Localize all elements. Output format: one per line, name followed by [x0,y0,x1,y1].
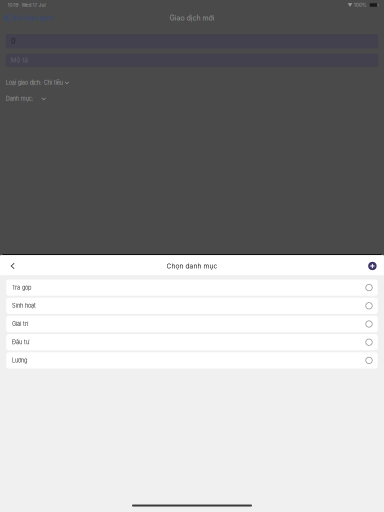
button[interactable]: Add category [359,256,384,275]
staticText: Giao dịch mới [169,14,214,22]
staticText: Loại giao dịch: [6,79,44,86]
button[interactable]: Back [0,256,23,275]
staticText: Trả góp [12,284,31,291]
staticText: Sinh hoạt [12,302,36,309]
button[interactable]: Trả góp [6,279,378,296]
button[interactable]: Danh mục: [6,94,378,104]
staticText: Chọn danh mục [166,262,217,270]
staticText: Lương [12,357,27,364]
staticText: 100% [354,2,367,8]
staticText: DS Giao dịch [12,14,54,22]
staticText: Chi tiêu [44,79,63,86]
button[interactable]: Đầu tư [6,334,378,350]
button[interactable]: Loại giao dịch: [6,78,378,88]
button[interactable]: DS Giao dịch [0,10,59,26]
staticText: Đầu tư [12,339,29,346]
staticText: Danh mục: [6,95,34,102]
staticText: 10:19 Wed 17 Jul [7,2,45,8]
staticText: Mô tả [11,56,29,64]
button[interactable]: Sinh hoạt [6,298,378,314]
staticText: 0 [11,37,16,45]
button[interactable]: Giải trí [6,316,378,332]
button[interactable]: Lương [6,352,378,368]
staticText: Giải trí [12,321,28,327]
